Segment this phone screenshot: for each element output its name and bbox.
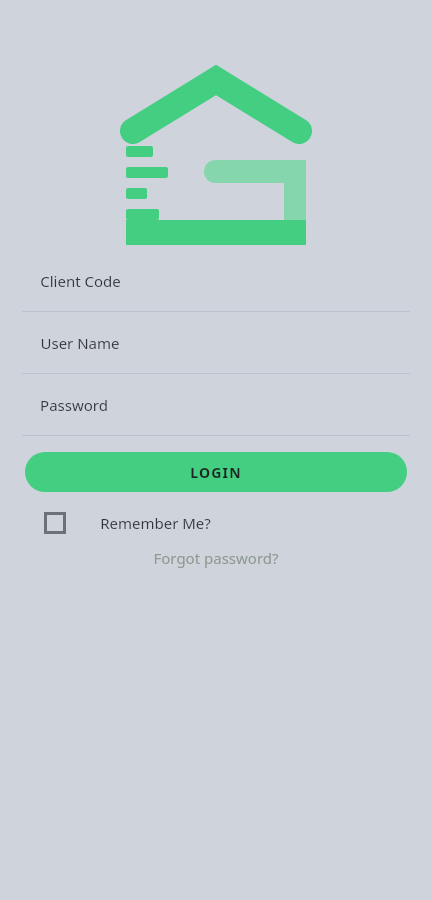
button[interactable]: Forgot password? (0, 548, 432, 568)
button[interactable]: User Name (0, 312, 432, 374)
staticText: Client Code (40, 271, 121, 291)
staticText: LOGIN (190, 463, 242, 482)
button[interactable]: Remember Me? (44, 512, 211, 534)
staticText: Remember Me? (100, 513, 211, 533)
staticText: User Name (40, 333, 120, 353)
button[interactable]: Client Code (0, 250, 432, 312)
staticText: Password (40, 395, 108, 415)
staticText: Forgot password? (153, 548, 279, 568)
button[interactable]: Password (0, 374, 432, 436)
button[interactable]: LOGIN (25, 452, 407, 492)
